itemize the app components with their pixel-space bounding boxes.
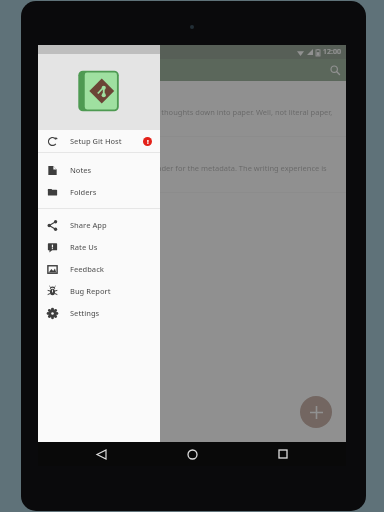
button[interactable]: Share App bbox=[38, 214, 160, 236]
button[interactable]: Feedback bbox=[38, 258, 160, 280]
button[interactable]: New note bbox=[300, 396, 332, 428]
staticText: Bug Report bbox=[70, 286, 111, 296]
staticText: Share App bbox=[70, 220, 107, 230]
button[interactable]: Bug Report bbox=[38, 280, 160, 302]
button[interactable]: Search bbox=[324, 59, 346, 81]
staticText: ! bbox=[147, 138, 149, 146]
staticText: Markdown files with a YAML header for th… bbox=[48, 163, 336, 173]
staticText: 12:00 bbox=[323, 47, 341, 57]
staticText: Settings bbox=[70, 308, 100, 318]
staticText: Feedback bbox=[70, 264, 105, 274]
button[interactable]: Markdown files with a YAML header for th… bbox=[38, 137, 346, 193]
button[interactable]: Rate Us bbox=[38, 236, 160, 258]
button[interactable]: Home bbox=[181, 443, 203, 465]
button[interactable]: Notes bbox=[38, 159, 160, 181]
button[interactable]: Back bbox=[90, 443, 112, 465]
button[interactable]: Setup Git Host bbox=[38, 130, 160, 152]
staticText: Setup Git Host bbox=[70, 136, 122, 146]
button[interactable]: A place to write and get all your though… bbox=[38, 81, 346, 137]
button[interactable]: Recents bbox=[272, 443, 294, 465]
staticText: Rate Us bbox=[70, 242, 98, 252]
button[interactable]: Folders bbox=[38, 181, 160, 203]
staticText: Notes bbox=[70, 165, 92, 175]
button[interactable]: Settings bbox=[38, 302, 160, 324]
staticText: Folders bbox=[70, 187, 97, 197]
staticText: A place to write and get all your though… bbox=[48, 107, 336, 117]
